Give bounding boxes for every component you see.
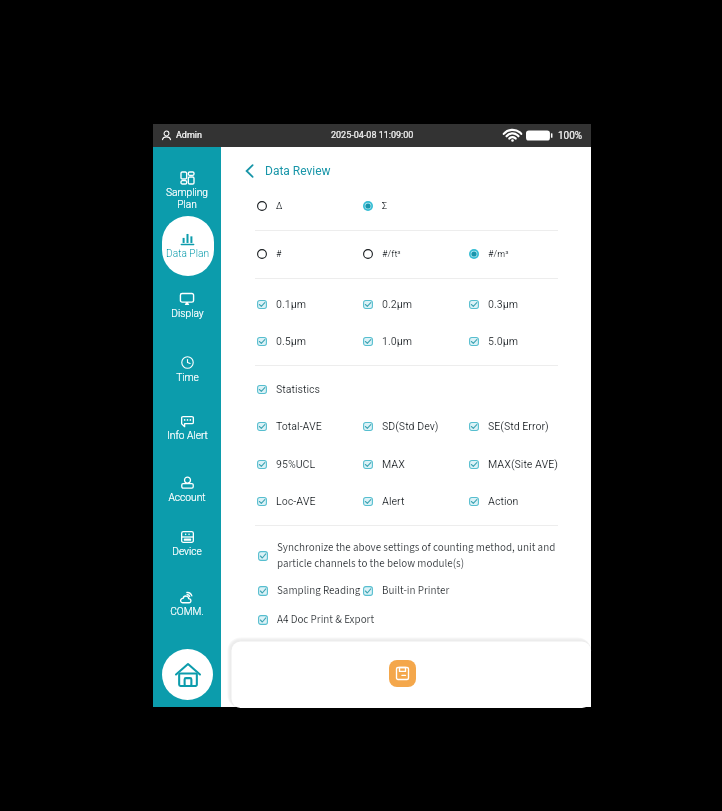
staticText: 100% (558, 130, 583, 142)
button[interactable]: Device (153, 521, 221, 570)
staticText: MAX(Site AVE) (488, 458, 559, 470)
staticText: #/ft³ (382, 249, 401, 260)
button[interactable]: Sampling Plan (153, 162, 221, 222)
button[interactable]: Back (245, 160, 331, 181)
button[interactable]: Account (153, 467, 221, 516)
staticText: Δ (276, 201, 283, 212)
staticText: A4 Doc Print & Export (277, 612, 375, 628)
button[interactable]: Sampling Reading (258, 582, 361, 600)
staticText: SD(Std Dev) (382, 420, 439, 432)
button[interactable]: MAX(Site AVE) (469, 455, 559, 473)
staticText: SE(Std Error) (488, 420, 549, 432)
button[interactable]: 5.0µm (469, 332, 518, 350)
button[interactable]: Σ (363, 197, 388, 215)
button[interactable]: Synchronize settings (258, 540, 558, 572)
button[interactable]: Loc-AVE (257, 492, 316, 510)
staticText: Synchronize the above settings of counti… (277, 540, 558, 572)
button[interactable]: Time (153, 346, 221, 396)
staticText: Device (172, 546, 202, 558)
staticText: Admin (176, 130, 202, 141)
staticText: # (276, 249, 282, 260)
staticText: Loc-AVE (276, 495, 316, 507)
staticText: 2025-04-08 11:09:00 (331, 130, 414, 141)
button[interactable]: Alert (363, 492, 405, 510)
button[interactable]: #/m³ (469, 245, 509, 263)
button[interactable]: MAX (363, 455, 405, 473)
button[interactable]: Data Plan (153, 223, 221, 272)
button[interactable]: 1.0µm (363, 332, 412, 350)
staticText: Sampling Reading (277, 583, 361, 599)
staticText: Data Plan (166, 248, 209, 260)
button[interactable]: Total-AVE (257, 417, 322, 435)
staticText: Data Review (265, 164, 331, 178)
staticText: Σ (382, 201, 388, 212)
button[interactable]: #/ft³ (363, 245, 401, 263)
staticText: 1.0µm (382, 335, 412, 347)
staticText: Alert (382, 495, 405, 507)
button[interactable]: Home (162, 649, 213, 700)
staticText: Action (488, 495, 519, 507)
button[interactable]: SD(Std Dev) (363, 417, 439, 435)
staticText: Sampling Plan (166, 187, 208, 210)
staticText: Info Alert (167, 430, 208, 442)
button[interactable]: Save (389, 660, 416, 687)
button[interactable]: Statistics (257, 380, 321, 398)
button[interactable]: Display (153, 283, 221, 332)
staticText: 0.2µm (382, 298, 412, 310)
button[interactable]: A4 Doc Print & Export (258, 611, 375, 629)
button[interactable]: 0.3µm (469, 295, 518, 313)
staticText: Time (176, 372, 199, 384)
button[interactable]: 0.2µm (363, 295, 412, 313)
button[interactable]: 0.5µm (257, 332, 306, 350)
button[interactable]: SE(Std Error) (469, 417, 549, 435)
staticText: 0.1µm (276, 298, 306, 310)
button[interactable]: 95%UCL (257, 455, 316, 473)
button[interactable]: Action (469, 492, 519, 510)
staticText: 95%UCL (276, 458, 316, 470)
staticText: Statistics (276, 383, 321, 395)
button[interactable]: COMM. (153, 581, 221, 630)
staticText: 5.0µm (488, 335, 518, 347)
button[interactable]: Info Alert (153, 406, 221, 454)
staticText: 0.3µm (488, 298, 518, 310)
staticText: Account (168, 492, 206, 504)
staticText: Total-AVE (276, 420, 322, 432)
button[interactable]: Δ (257, 197, 283, 215)
staticText: COMM. (170, 606, 204, 618)
button[interactable]: # (257, 245, 282, 263)
staticText: 0.5µm (276, 335, 306, 347)
button[interactable]: 0.1µm (257, 295, 306, 313)
staticText: Display (171, 308, 204, 320)
staticText: MAX (382, 458, 405, 470)
button[interactable]: Built-in Printer (363, 582, 450, 600)
staticText: Built-in Printer (382, 583, 450, 599)
staticText: #/m³ (488, 249, 509, 260)
